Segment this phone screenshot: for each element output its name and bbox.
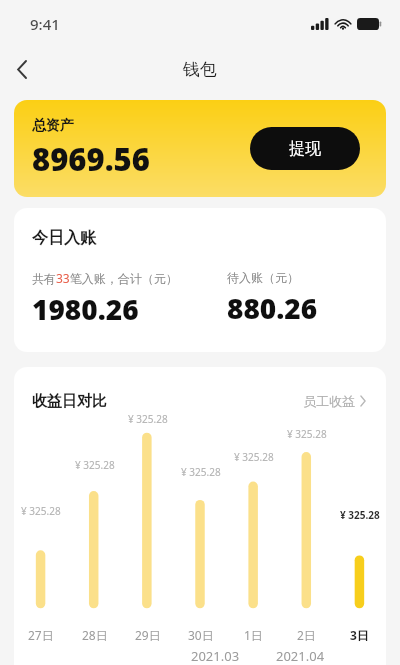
- staticText: ¥ 325.28: [181, 465, 221, 479]
- staticText: ¥ 325.28: [340, 508, 380, 522]
- staticText: 钱包: [183, 59, 217, 80]
- button[interactable]: 提现: [250, 127, 360, 170]
- staticText: 共有33笔入账，合计（元）: [32, 270, 178, 286]
- staticText: 今日入账: [32, 228, 96, 248]
- staticText: 880.26: [227, 289, 318, 327]
- staticText: 2日: [297, 627, 316, 643]
- staticText: 28日: [82, 627, 108, 643]
- staticText: 1日: [244, 627, 263, 643]
- staticText: 总资产: [32, 117, 74, 135]
- staticText: 8969.56: [32, 138, 150, 180]
- staticText: 收益日对比: [32, 392, 107, 411]
- staticText: ¥ 325.28: [234, 450, 274, 464]
- staticText: ¥ 325.28: [287, 427, 327, 441]
- staticText: 2021.03: [191, 647, 240, 665]
- staticText: 27日: [28, 627, 54, 643]
- staticText: ¥ 325.28: [21, 504, 61, 518]
- staticText: 9:41: [30, 14, 60, 34]
- button[interactable]: 总资产: [14, 100, 386, 197]
- staticText: 2021.04: [276, 647, 325, 665]
- staticText: ¥ 325.28: [75, 458, 115, 472]
- staticText: 待入账（元）: [227, 270, 299, 285]
- staticText: 员工收益: [303, 393, 355, 409]
- staticText: 29日: [135, 627, 161, 643]
- staticText: 提现: [289, 139, 321, 159]
- button[interactable]: Back: [6, 53, 38, 85]
- staticText: 1980.26: [32, 290, 139, 328]
- staticText: ¥ 325.28: [128, 412, 168, 426]
- staticText: 3日: [350, 627, 369, 643]
- button[interactable]: 员工收益: [299, 389, 370, 413]
- staticText: 30日: [188, 627, 214, 643]
